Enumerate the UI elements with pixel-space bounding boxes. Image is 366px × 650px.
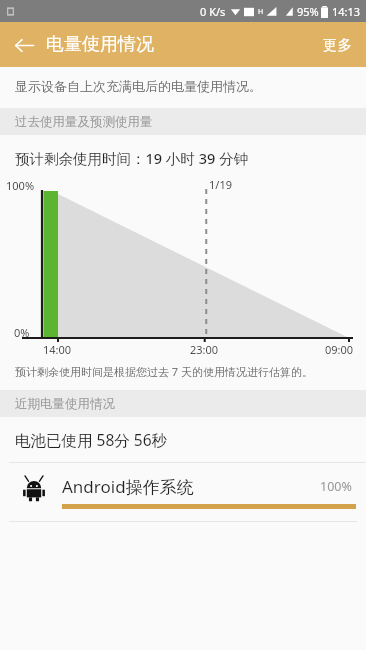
staticText: 预计剩余使用时间是根据您过去 7 天的使用情况进行估算的。	[15, 364, 314, 379]
staticText: 更多	[323, 36, 352, 54]
staticText: 1/19	[209, 177, 232, 192]
button[interactable]: 更多	[309, 26, 366, 64]
staticText: 14:13	[332, 4, 361, 19]
staticText: 14:00	[43, 342, 72, 357]
staticText: 100%	[6, 178, 35, 193]
staticText: 过去使用量及预测使用量	[15, 114, 153, 130]
staticText: 预计剩余使用时间：19 小时 39 分钟	[15, 148, 248, 168]
staticText: 95%	[297, 4, 319, 19]
staticText: 电池已使用 58分 56秒	[15, 429, 168, 450]
staticText: 近期电量使用情况	[15, 396, 115, 412]
staticText: 0 K/s	[200, 4, 226, 19]
staticText: 电量使用情况	[46, 33, 154, 56]
staticText: 100%	[320, 478, 352, 495]
staticText: 23:00	[190, 342, 219, 357]
staticText: H	[258, 7, 264, 17]
staticText: Android操作系统	[62, 475, 194, 498]
staticText: 0%	[14, 325, 30, 340]
button[interactable]: Android操作系统	[0, 463, 366, 521]
button[interactable]: Back	[6, 27, 42, 63]
staticText: 显示设备自上次充满电后的电量使用情况。	[15, 78, 262, 94]
staticText: 09:00	[325, 342, 354, 357]
